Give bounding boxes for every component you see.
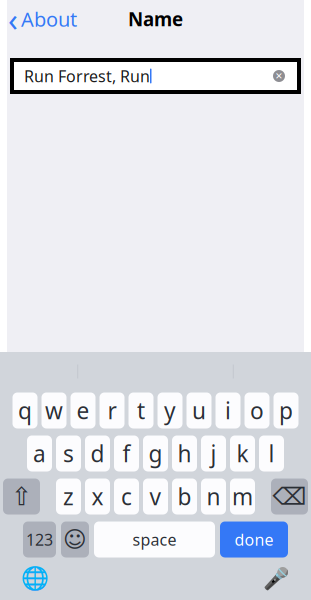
- staticText: z: [63, 481, 74, 511]
- staticText: ‹: [8, 0, 18, 40]
- staticText: f: [122, 438, 130, 468]
- button[interactable]: l: [259, 435, 284, 471]
- button[interactable]: n: [201, 478, 226, 514]
- staticText: 🌐: [21, 566, 49, 591]
- staticText: n: [206, 481, 220, 511]
- staticText: x: [91, 481, 103, 511]
- button[interactable]: Dictation: [259, 563, 293, 593]
- staticText: e: [76, 395, 89, 425]
- staticText: ✕: [275, 71, 283, 81]
- staticText: q: [18, 395, 32, 425]
- button[interactable]: y: [157, 392, 182, 428]
- staticText: s: [63, 438, 74, 468]
- staticText: j: [210, 438, 216, 468]
- staticText: 🎤: [262, 566, 289, 591]
- staticText: u: [192, 395, 206, 425]
- staticText: o: [250, 395, 264, 425]
- staticText: i: [225, 395, 231, 425]
- staticText: Name: [128, 7, 183, 31]
- staticText: ☺: [63, 527, 87, 552]
- staticText: l: [268, 438, 274, 468]
- staticText: space: [132, 529, 176, 550]
- staticText: a: [33, 438, 46, 468]
- staticText: b: [177, 481, 191, 511]
- button[interactable]: space: [94, 521, 215, 557]
- staticText: y: [164, 395, 176, 425]
- staticText: d: [90, 438, 104, 468]
- staticText: c: [121, 481, 132, 511]
- button[interactable]: s: [56, 435, 81, 471]
- button[interactable]: d: [85, 435, 110, 471]
- button[interactable]: a: [27, 435, 52, 471]
- button[interactable]: f: [114, 435, 139, 471]
- button[interactable]: z: [56, 478, 81, 514]
- button[interactable]: t: [128, 392, 153, 428]
- button[interactable]: g: [143, 435, 168, 471]
- staticText: Run Forrest, Run: [24, 65, 150, 87]
- button[interactable]: m: [230, 478, 255, 514]
- button[interactable]: Shift: [3, 478, 40, 514]
- staticText: v: [149, 481, 161, 511]
- staticText: g: [148, 438, 162, 468]
- button[interactable]: q: [12, 392, 37, 428]
- staticText: k: [236, 438, 248, 468]
- button[interactable]: i: [215, 392, 240, 428]
- staticText: ⇧: [11, 482, 32, 511]
- staticText: About: [21, 6, 77, 32]
- staticText: m: [232, 481, 253, 511]
- button[interactable]: b: [172, 478, 197, 514]
- staticText: ⌫: [272, 483, 306, 510]
- staticText: h: [177, 438, 191, 468]
- button[interactable]: Delete: [271, 478, 308, 514]
- button[interactable]: Emoji: [61, 521, 89, 557]
- staticText: p: [279, 395, 293, 425]
- staticText: done: [234, 529, 273, 550]
- button[interactable]: x: [85, 478, 110, 514]
- staticText: 123: [26, 529, 53, 550]
- button[interactable]: Run Forrest, Run: [10, 58, 301, 94]
- button[interactable]: o: [244, 392, 269, 428]
- button[interactable]: p: [273, 392, 298, 428]
- staticText: r: [107, 395, 116, 425]
- button[interactable]: c: [114, 478, 139, 514]
- button[interactable]: Change keyboard: [18, 563, 52, 593]
- button[interactable]: j: [201, 435, 226, 471]
- button[interactable]: u: [186, 392, 211, 428]
- staticText: w: [45, 395, 63, 425]
- button[interactable]: h: [172, 435, 197, 471]
- button[interactable]: w: [41, 392, 66, 428]
- button[interactable]: r: [99, 392, 124, 428]
- button[interactable]: v: [143, 478, 168, 514]
- button[interactable]: 123: [23, 521, 56, 557]
- staticText: t: [137, 395, 145, 425]
- button[interactable]: done: [220, 521, 288, 557]
- button[interactable]: ‹: [0, 0, 77, 44]
- button[interactable]: e: [70, 392, 95, 428]
- button[interactable]: k: [230, 435, 255, 471]
